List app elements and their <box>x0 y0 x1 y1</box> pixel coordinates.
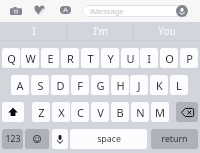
button[interactable]: P <box>180 48 198 68</box>
staticText: M <box>155 105 165 120</box>
button[interactable]: V <box>91 102 109 122</box>
staticText: 123 <box>5 133 21 145</box>
button[interactable]: A <box>11 75 29 95</box>
staticText: P <box>186 51 193 66</box>
button[interactable]: L <box>170 75 188 95</box>
staticText: O <box>165 51 174 66</box>
staticText: K <box>156 78 163 93</box>
staticText: G <box>96 78 105 93</box>
button[interactable]: J <box>130 75 148 95</box>
staticText: T <box>87 51 94 66</box>
staticText: F <box>77 78 83 93</box>
button[interactable]: R <box>61 48 79 68</box>
button[interactable]: E <box>41 48 59 68</box>
staticText: J <box>137 78 141 93</box>
staticText: D <box>56 78 65 93</box>
button[interactable]: Z <box>32 102 50 122</box>
staticText: B <box>116 105 124 120</box>
button[interactable]: Dictate <box>176 5 188 17</box>
button[interactable]: G <box>91 75 109 95</box>
staticText: Q <box>7 51 16 66</box>
staticText: A <box>16 78 24 93</box>
staticText: I'm <box>93 24 108 38</box>
button[interactable]: 123 <box>2 129 23 149</box>
button[interactable]: Dictation <box>52 129 68 149</box>
button[interactable]: N <box>131 102 149 122</box>
button[interactable]: O <box>160 48 178 68</box>
staticText: C <box>77 105 84 120</box>
button[interactable]: M <box>151 102 169 122</box>
staticText: H <box>116 78 125 93</box>
staticText: R <box>67 51 74 66</box>
staticText: I <box>147 51 151 66</box>
button[interactable]: I <box>140 48 158 68</box>
button[interactable]: D <box>51 75 69 95</box>
button[interactable]: W <box>21 48 39 68</box>
button[interactable]: Camera <box>10 7 22 15</box>
staticText: Z <box>38 105 45 120</box>
button[interactable]: Shift <box>2 102 24 122</box>
staticText: Y <box>107 51 114 66</box>
button[interactable]: I'm <box>67 21 134 40</box>
staticText: You <box>158 24 176 38</box>
staticText: I <box>32 24 36 38</box>
button[interactable]: Delete <box>176 102 198 122</box>
button[interactable]: return <box>151 129 198 149</box>
button[interactable]: B <box>111 102 129 122</box>
button[interactable]: S <box>31 75 49 95</box>
staticText: N <box>136 105 145 120</box>
staticText: U <box>126 51 135 66</box>
button[interactable]: Q <box>2 48 20 68</box>
button[interactable]: Y <box>101 48 119 68</box>
button[interactable]: F <box>71 75 89 95</box>
staticText: X <box>58 105 65 120</box>
button[interactable]: K <box>150 75 168 95</box>
button[interactable]: space <box>70 129 147 149</box>
button[interactable]: I <box>0 21 67 40</box>
staticText: E <box>47 51 54 66</box>
button[interactable]: You <box>133 21 200 40</box>
button[interactable]: iMessage <box>82 5 192 17</box>
button[interactable]: Emoji <box>25 129 49 149</box>
button[interactable]: Digital Touch <box>34 5 45 15</box>
staticText: return <box>161 133 188 145</box>
staticText: L <box>176 78 182 93</box>
staticText: V <box>97 105 104 120</box>
button[interactable]: App Store <box>60 6 71 14</box>
button[interactable]: X <box>52 102 70 122</box>
staticText: iMessage <box>90 6 124 16</box>
button[interactable]: U <box>121 48 139 68</box>
staticText: W <box>25 51 36 66</box>
staticText: space <box>97 133 121 145</box>
button[interactable]: H <box>111 75 129 95</box>
staticText: S <box>37 78 44 93</box>
button[interactable]: T <box>81 48 99 68</box>
button[interactable]: C <box>71 102 89 122</box>
